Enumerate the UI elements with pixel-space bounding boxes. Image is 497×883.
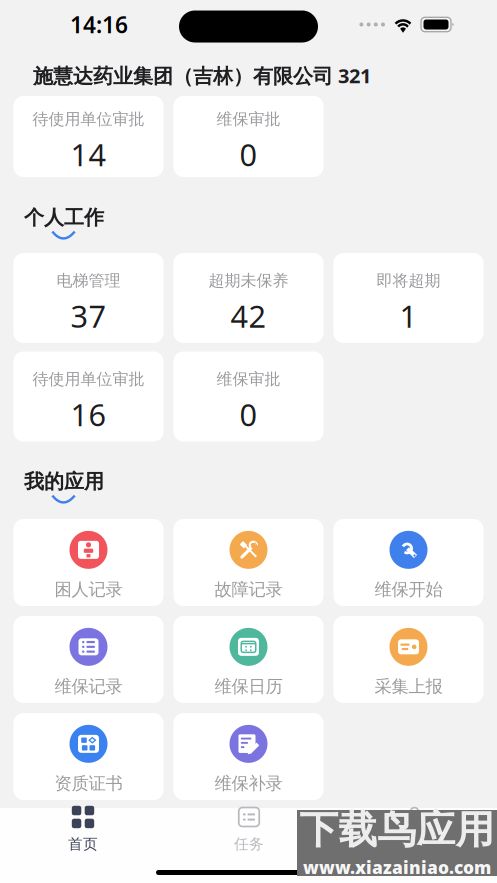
staticText: 资质证书	[54, 773, 122, 794]
button[interactable]: 维保审批	[173, 351, 323, 441]
button[interactable]: 待使用单位审批	[13, 96, 163, 177]
staticText: 下载鸟应用	[299, 806, 494, 854]
button[interactable]: 首页	[0, 808, 166, 856]
staticText: 施慧达药业集团（吉林）有限公司 321	[33, 62, 371, 89]
button[interactable]: 维保日历	[173, 616, 323, 703]
button[interactable]: 困人记录	[13, 519, 163, 606]
button[interactable]: 电梯管理	[13, 253, 163, 343]
button[interactable]: 任务	[166, 808, 332, 856]
staticText: 即将超期	[376, 271, 440, 290]
staticText: 我的应用	[24, 469, 104, 494]
staticText: 0	[239, 134, 257, 175]
staticText: 14	[70, 134, 106, 175]
staticText: 首页	[68, 835, 98, 853]
button[interactable]: 超期未保养	[173, 253, 323, 343]
button[interactable]: 我的	[332, 808, 497, 856]
staticText: 维保开始	[374, 579, 442, 600]
staticText: 电梯管理	[56, 271, 120, 290]
staticText: 维保审批	[216, 109, 280, 129]
button[interactable]: 维保记录	[13, 616, 163, 703]
staticText: 个人工作	[24, 205, 104, 230]
staticText: 16	[70, 394, 106, 435]
staticText: 42	[230, 295, 266, 336]
staticText: 0	[239, 394, 257, 435]
button[interactable]: 采集上报	[333, 616, 483, 703]
button[interactable]: 维保审批	[173, 96, 323, 177]
staticText: 14:16	[70, 9, 128, 39]
button[interactable]: 故障记录	[173, 519, 323, 606]
staticText: 超期未保养	[208, 271, 288, 290]
staticText: 采集上报	[374, 676, 442, 697]
button[interactable]: 维保开始	[333, 519, 483, 606]
button[interactable]: 即将超期	[333, 253, 483, 343]
staticText: 维保记录	[54, 676, 122, 697]
staticText: 故障记录	[214, 579, 282, 600]
button[interactable]: 待使用单位审批	[13, 351, 163, 441]
staticText: 维保日历	[214, 676, 282, 697]
staticText: 任务	[234, 835, 264, 853]
staticText: 维保审批	[216, 369, 280, 389]
staticText: 1	[399, 295, 417, 336]
staticText: www.xiazainiao.com	[303, 856, 491, 879]
staticText: 困人记录	[54, 579, 122, 600]
button[interactable]: 资质证书	[13, 713, 163, 800]
staticText: 待使用单位审批	[32, 369, 144, 389]
button[interactable]: 维保补录	[173, 713, 323, 800]
staticText: 维保补录	[214, 773, 282, 794]
staticText: 我的	[399, 835, 429, 853]
staticText: 37	[70, 295, 106, 336]
staticText: 待使用单位审批	[32, 109, 144, 129]
